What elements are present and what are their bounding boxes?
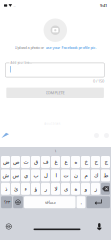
staticText: م — [84, 172, 87, 178]
staticText: Upload a photo or — [14, 45, 45, 50]
staticText: لا — [54, 186, 57, 192]
staticText: ط — [103, 172, 108, 178]
button[interactable]: مسافة — [24, 196, 75, 208]
button[interactable]: ش — [1, 169, 10, 181]
staticText: ١ — [54, 148, 56, 153]
button[interactable]: ص — [11, 156, 20, 168]
staticText: غ — [54, 159, 57, 165]
button[interactable]: ث — [21, 156, 30, 168]
staticText: ق — [33, 159, 37, 165]
staticText: ع — [64, 159, 67, 165]
button[interactable]: Switch keyboard — [13, 196, 23, 208]
button[interactable]: س — [11, 169, 20, 181]
staticText: ٢٣؟ — [3, 200, 9, 204]
button[interactable]: ض — [1, 156, 10, 168]
staticText: ا — [55, 172, 56, 178]
button[interactable]: COMPLETE — [6, 88, 104, 98]
button[interactable]: ا — [51, 169, 60, 181]
staticText: ض — [2, 159, 8, 165]
button[interactable]: Delete — [101, 183, 110, 195]
button[interactable]: ت — [61, 169, 70, 181]
staticText: ر — [44, 186, 47, 192]
staticText: و — [84, 186, 87, 192]
staticText: ة — [74, 186, 77, 192]
staticText: ئ — [13, 186, 17, 192]
staticText: .. — [13, 3, 15, 8]
button[interactable]: ق — [31, 156, 40, 168]
button[interactable]: ع — [61, 156, 70, 168]
staticText: 9:41 — [100, 3, 107, 8]
staticText: ؤ — [34, 186, 37, 192]
staticText: خ — [84, 159, 87, 165]
button[interactable]: ؤ — [31, 183, 40, 195]
staticText: ص — [12, 159, 18, 165]
staticText: ن — [73, 172, 77, 178]
staticText: ج — [104, 159, 107, 165]
staticText: ى — [63, 186, 67, 192]
staticText: 0 / 150 — [93, 78, 104, 84]
staticText: ش — [2, 172, 9, 178]
button[interactable]: ج — [101, 156, 110, 168]
staticText: ح — [94, 159, 97, 165]
staticText: use your Facebook profile pic. — [45, 45, 96, 50]
button[interactable]: Paste — [1, 132, 10, 139]
button[interactable]: ط — [101, 169, 110, 181]
staticText: . — [80, 199, 81, 206]
button[interactable]: ف — [41, 156, 50, 168]
button[interactable]: ك — [91, 169, 100, 181]
button[interactable]: خ — [81, 156, 90, 168]
button[interactable]: ن — [71, 169, 80, 181]
staticText: ت — [63, 172, 68, 178]
button[interactable]: ر — [41, 183, 50, 195]
button[interactable]: ح — [91, 156, 100, 168]
button[interactable]: ه — [71, 156, 80, 168]
button[interactable]: Return — [86, 196, 110, 208]
button[interactable]: ل — [41, 169, 50, 181]
staticText: ذ — [4, 186, 6, 192]
staticText: about:blank — [44, 122, 60, 125]
staticText: ك — [93, 172, 97, 178]
staticText: ل — [43, 172, 47, 178]
button[interactable]: ز — [91, 183, 100, 195]
button[interactable]: ئ — [11, 183, 20, 195]
staticText: ي — [23, 172, 27, 178]
button[interactable]: Dictate — [95, 222, 104, 231]
staticText: ز — [94, 186, 97, 192]
button[interactable]: و — [81, 183, 90, 195]
button[interactable]: . — [77, 196, 85, 208]
staticText: COMPLETE — [46, 90, 65, 95]
staticText: س — [12, 172, 19, 178]
button[interactable]: ٢٣؟ — [1, 196, 12, 208]
button[interactable]: ء — [21, 183, 30, 195]
button[interactable]: غ — [51, 156, 60, 168]
staticText: ب — [33, 172, 38, 178]
staticText: ء — [24, 186, 27, 192]
button[interactable]: ذ — [1, 183, 10, 195]
button[interactable]: Upload photo — [43, 18, 67, 42]
button[interactable]: ي — [21, 169, 30, 181]
staticText: ف — [42, 159, 48, 165]
staticText: مسافة — [44, 200, 55, 204]
button[interactable]: ة — [71, 183, 80, 195]
staticText: ث — [23, 159, 28, 165]
staticText: Add your bio... — [10, 61, 32, 64]
button[interactable]: ى — [61, 183, 70, 195]
staticText: ه — [74, 159, 77, 165]
button[interactable]: لا — [51, 183, 60, 195]
button[interactable]: use your Facebook profile pic. — [45, 45, 96, 50]
button[interactable]: Emoji keyboard — [4, 222, 13, 231]
button[interactable]: م — [81, 169, 90, 181]
button[interactable]: ب — [31, 169, 40, 181]
